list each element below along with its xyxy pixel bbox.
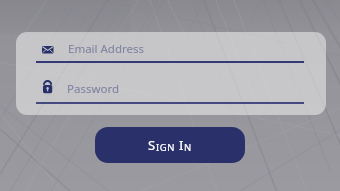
staticText: S	[148, 136, 156, 154]
button[interactable]: Email Address	[36, 38, 304, 63]
staticText: N	[184, 141, 192, 154]
staticText: Password	[67, 81, 120, 97]
staticText: Email Address	[68, 41, 145, 57]
button[interactable]: Password	[36, 78, 304, 102]
staticText: I	[179, 136, 184, 154]
button[interactable]: S	[95, 127, 245, 163]
staticText: IGN	[156, 141, 175, 154]
